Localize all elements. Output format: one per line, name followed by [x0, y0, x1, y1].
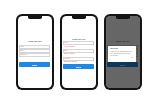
staticText: Password is required	[64, 61, 78, 63]
button[interactable]: Name	[63, 41, 94, 45]
staticText: Email is required	[64, 53, 75, 55]
button[interactable]: Password	[107, 53, 138, 57]
button[interactable]: Email	[107, 49, 138, 53]
staticText: Email	[20, 50, 24, 52]
button[interactable]: Email	[19, 49, 50, 53]
staticText: Password	[108, 54, 115, 56]
button[interactable]: Password	[63, 57, 94, 61]
staticText: Password	[64, 58, 71, 60]
staticText: Name	[64, 42, 68, 44]
staticText: Name	[20, 46, 24, 48]
staticText: Name	[108, 46, 112, 48]
staticText: Submit	[32, 64, 37, 66]
staticText: Submit	[76, 66, 81, 68]
staticText: Name is required	[64, 46, 75, 48]
staticText: Password	[20, 54, 27, 56]
button[interactable]: Password	[19, 53, 50, 57]
button[interactable]: Submit	[107, 62, 138, 67]
staticText: Email	[64, 50, 68, 52]
staticText: Simple Login Form	[106, 40, 140, 42]
button[interactable]: Name	[19, 45, 50, 49]
staticText: Simple Login Form	[18, 40, 52, 42]
staticText: Simple Login Form	[62, 38, 96, 40]
button[interactable]: Submit	[19, 62, 50, 67]
button[interactable]: OK	[131, 57, 133, 59]
button[interactable]: Submit	[63, 64, 94, 69]
staticText: Email	[108, 50, 112, 52]
button[interactable]: Email	[63, 49, 94, 53]
staticText: Thank you for registering with us. Your …	[110, 50, 134, 56]
button[interactable]: Name	[107, 45, 138, 49]
staticText: Successful	[110, 47, 119, 49]
staticText: Submit	[120, 64, 125, 66]
